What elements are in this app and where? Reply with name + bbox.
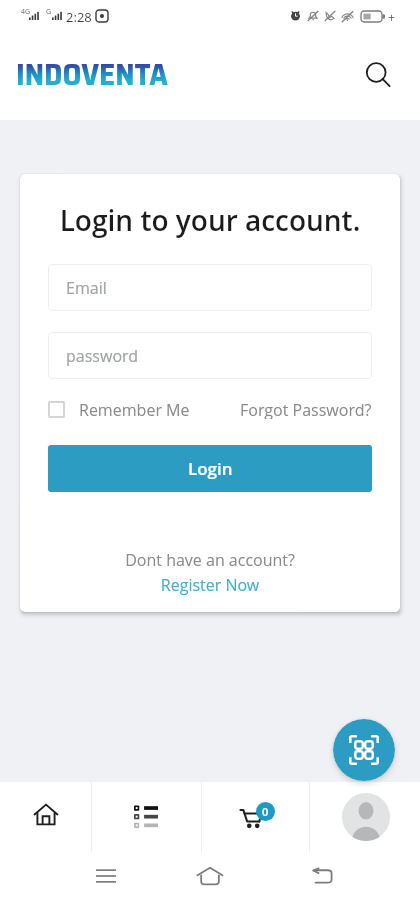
staticText: Login (188, 457, 233, 480)
staticText: G (46, 7, 52, 17)
staticText: Email (66, 277, 107, 299)
staticText: Login to your account. (20, 201, 400, 239)
button[interactable]: password (48, 332, 372, 379)
button[interactable]: Orders (92, 782, 201, 852)
staticText: + (388, 9, 395, 25)
staticText: Remember Me (79, 399, 190, 419)
button[interactable]: Login (48, 445, 372, 492)
staticText: Dont have an account? (20, 549, 400, 571)
button[interactable]: Home (192, 858, 227, 893)
button[interactable]: Search (363, 60, 395, 92)
button[interactable]: Scan QR code (333, 719, 395, 781)
staticText: password (66, 345, 139, 367)
button[interactable]: Forgot Password? (240, 399, 372, 419)
button[interactable]: Recent apps (88, 858, 123, 893)
button[interactable]: Register Now (20, 574, 400, 596)
button[interactable]: Profile (310, 782, 420, 852)
staticText: 0 (262, 804, 269, 819)
staticText: INDOVENTA (16, 50, 168, 99)
button[interactable]: Home (0, 782, 91, 852)
button[interactable]: Back (304, 858, 339, 893)
button[interactable]: Email (48, 264, 372, 311)
staticText: 4G (21, 7, 31, 17)
button[interactable]: Remember Me (48, 399, 190, 419)
staticText: 2:28 (66, 8, 92, 26)
button[interactable]: Cart (202, 782, 309, 852)
